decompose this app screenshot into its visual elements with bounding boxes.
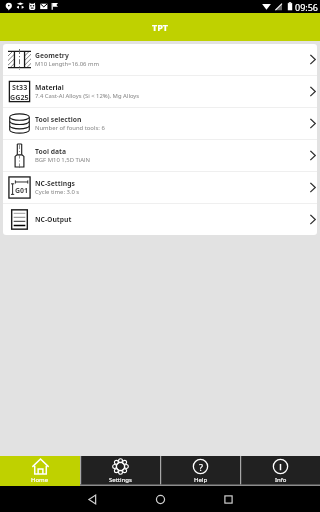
- button[interactable]: St33: [3, 76, 317, 107]
- staticText: NC-Output: [35, 215, 72, 224]
- staticText: Cycle time: 3.0 s: [35, 188, 80, 196]
- staticText: 7.4 Cast-Al Alloys (Si < 12%), Mg Alloys: [35, 92, 140, 100]
- button[interactable]: ?: [160, 456, 240, 486]
- staticText: St33: [12, 82, 28, 92]
- button[interactable]: Tool selection: [3, 108, 317, 139]
- button[interactable]: NC-Output: [3, 204, 317, 235]
- staticText: Help: [194, 476, 208, 484]
- staticText: Material: [35, 83, 64, 92]
- staticText: Settings: [109, 476, 132, 484]
- staticText: G01: [15, 186, 29, 196]
- staticText: 09:56: [295, 1, 319, 13]
- button[interactable]: Back: [79, 486, 105, 512]
- staticText: Info: [275, 476, 287, 484]
- staticText: Home: [31, 476, 49, 484]
- staticText: GG25: [10, 92, 29, 102]
- button[interactable]: Info: [240, 456, 320, 486]
- staticText: M10 Length=16.06 mm: [35, 60, 100, 68]
- staticText: TPT: [152, 21, 168, 33]
- staticText: Number of found tools: 6: [35, 124, 105, 132]
- button[interactable]: Tool data: [3, 140, 317, 171]
- staticText: Tool data: [35, 147, 67, 156]
- button[interactable]: Recents: [215, 486, 241, 512]
- button[interactable]: Home: [0, 456, 80, 486]
- staticText: BGF M10 1,5D TiAlN: [35, 156, 91, 164]
- button[interactable]: Settings: [80, 456, 160, 486]
- staticText: Geometry: [35, 51, 69, 60]
- staticText: NC-Settings: [35, 179, 75, 188]
- button[interactable]: Home: [147, 486, 173, 512]
- staticText: Tool selection: [35, 115, 82, 124]
- button[interactable]: G01: [3, 172, 317, 203]
- staticText: ?: [199, 461, 203, 473]
- button[interactable]: Geometry: [3, 44, 317, 75]
